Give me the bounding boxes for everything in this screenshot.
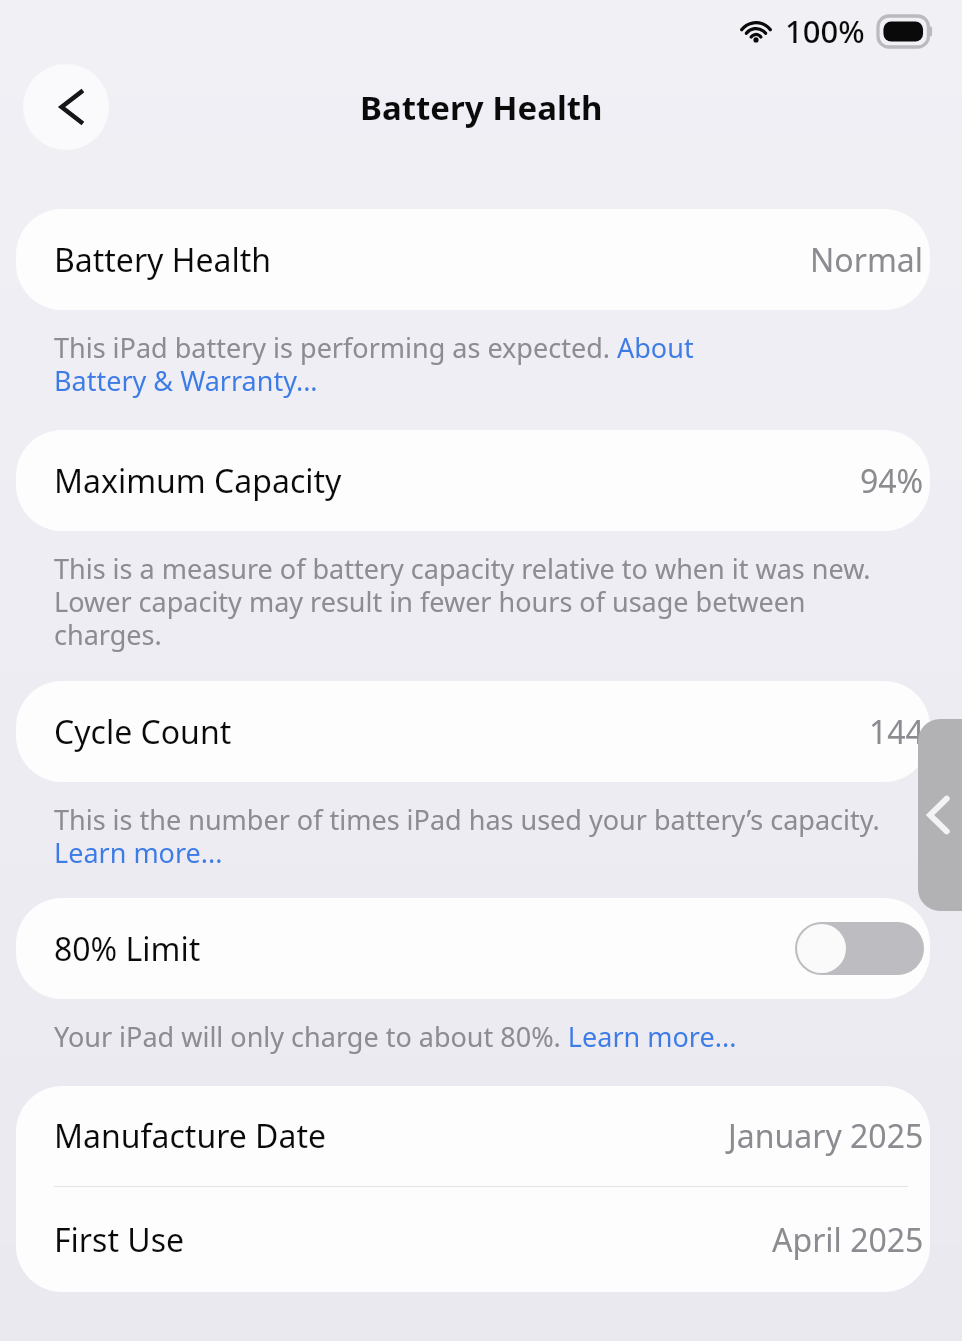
button[interactable]: Maximum Capacity (16, 430, 930, 531)
staticText: 94% (860, 459, 924, 503)
staticText: 144 (869, 710, 924, 754)
staticText: This iPad battery is performing as expec… (54, 329, 790, 399)
button[interactable]: First Use (16, 1187, 930, 1292)
button[interactable]: Open side panel (918, 719, 962, 911)
staticText: 100% (785, 10, 865, 52)
staticText: April 2025 (772, 1218, 924, 1262)
staticText: Battery Health (54, 238, 272, 282)
staticText: Battery Health (360, 85, 603, 130)
button[interactable]: 80% Limit (16, 898, 930, 999)
button[interactable]: Cycle Count (16, 681, 930, 782)
button[interactable]: Manufacture Date (16, 1086, 930, 1186)
staticText: First Use (54, 1218, 185, 1262)
staticText: January 2025 (728, 1114, 924, 1158)
button[interactable]: Back (23, 64, 109, 150)
button[interactable]: Battery Health (16, 209, 930, 310)
button[interactable]: 80% Limit, off (795, 922, 924, 975)
staticText: Normal (810, 238, 924, 282)
staticText: Manufacture Date (54, 1114, 327, 1158)
staticText: This is the number of times iPad has use… (54, 801, 890, 871)
staticText: Maximum Capacity (54, 459, 342, 503)
staticText: 80% Limit (54, 927, 201, 971)
staticText: Cycle Count (54, 710, 232, 754)
staticText: Your iPad will only charge to about 80%.… (54, 1018, 737, 1055)
staticText: This is a measure of battery capacity re… (54, 550, 920, 653)
